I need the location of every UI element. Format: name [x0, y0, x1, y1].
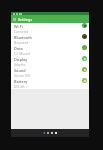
button[interactable]: Bluetooth icon [82, 34, 87, 39]
button[interactable]: Back [42, 129, 46, 137]
button[interactable]: Navigate up [11, 15, 18, 23]
button[interactable]: Data [11, 45, 89, 56]
button[interactable]: Bluetooth [11, 34, 89, 45]
button[interactable]: Sound icon [82, 67, 87, 72]
button[interactable]: Recent apps [50, 129, 54, 137]
button[interactable]: Wi‑Fi [11, 23, 89, 34]
button[interactable]: Display icon [82, 56, 87, 61]
staticText: Not paired [14, 41, 28, 45]
button[interactable]: Data icon [82, 45, 87, 50]
staticText: Battery [14, 79, 28, 84]
staticText: 1.2 GB used [14, 52, 30, 56]
staticText: Bluetooth [14, 35, 32, 40]
staticText: Connected [14, 30, 29, 34]
button[interactable]: Battery icon [82, 78, 87, 83]
staticText: Wi‑Fi [14, 24, 23, 29]
button[interactable]: Screenshot [54, 129, 58, 137]
staticText: Data [14, 46, 23, 51]
button[interactable]: Sound [11, 67, 89, 78]
staticText: Settings [18, 17, 32, 22]
staticText: Sound [14, 68, 26, 73]
staticText: 82% left [14, 85, 25, 89]
button[interactable]: Battery [11, 78, 89, 89]
button[interactable]: Wi‑Fi icon [82, 23, 87, 28]
staticText: Volume 70% [14, 74, 31, 78]
staticText: Display [14, 57, 28, 62]
staticText: Adaptive [14, 63, 26, 67]
button[interactable]: Home [46, 129, 50, 137]
button[interactable]: Display [11, 56, 89, 67]
